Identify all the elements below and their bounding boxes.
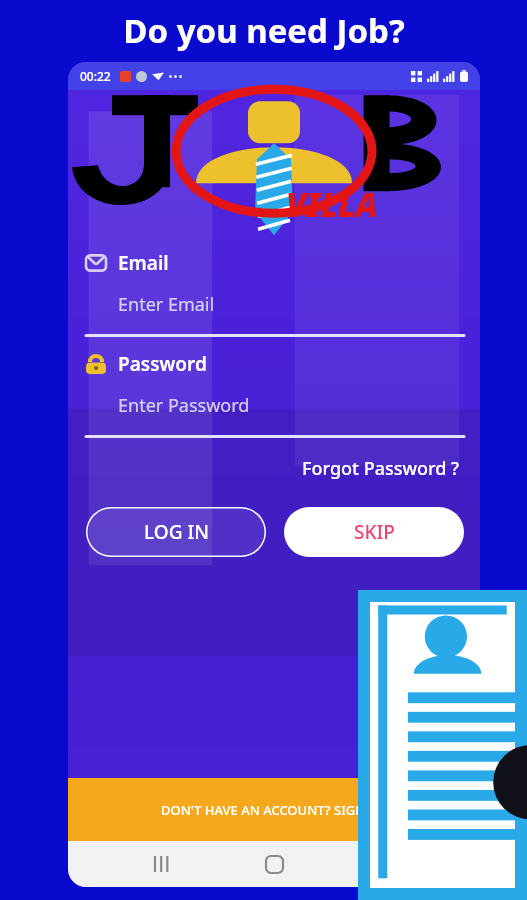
staticText: Do you need Job? — [123, 8, 405, 53]
button[interactable]: Recents — [141, 844, 181, 884]
button[interactable]: Back — [367, 844, 407, 884]
button[interactable]: DON'T HAVE AN ACCOUNT? SIGN UP — [68, 778, 480, 841]
staticText: SKIP — [354, 519, 395, 545]
button[interactable]: LOG IN — [86, 507, 266, 557]
button[interactable]: Home — [254, 844, 294, 884]
button[interactable]: Forgot Password ? — [298, 452, 464, 485]
staticText: Enter Password — [118, 393, 250, 418]
staticText: Enter Email — [118, 292, 215, 317]
staticText: LOG IN — [144, 519, 209, 545]
staticText: Password — [118, 351, 207, 377]
staticText: DON'T HAVE AN ACCOUNT? SIGN UP — [161, 801, 387, 819]
button[interactable]: SKIP — [284, 507, 464, 557]
staticText: VILLA — [286, 182, 378, 227]
staticText: Email — [118, 250, 169, 276]
staticText: 00:22 — [80, 68, 111, 84]
